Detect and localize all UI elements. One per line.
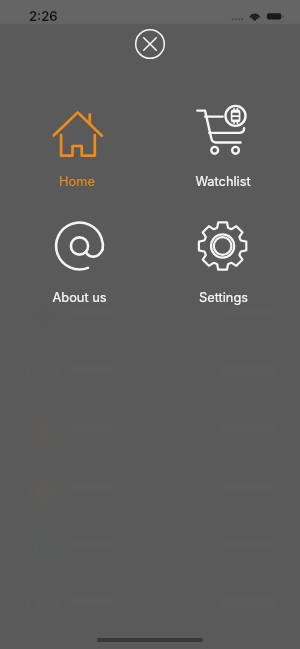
button[interactable]: Settings bbox=[177, 216, 269, 304]
staticText: Home bbox=[59, 174, 95, 189]
button[interactable]: About us bbox=[33, 216, 125, 304]
button[interactable]: Home bbox=[31, 100, 123, 188]
staticText: Watchlist bbox=[195, 174, 251, 189]
button[interactable]: Watchlist bbox=[177, 100, 269, 188]
button[interactable]: Close menu bbox=[133, 27, 167, 61]
staticText: Settings bbox=[199, 290, 248, 305]
staticText: 2:26 bbox=[29, 8, 58, 24]
staticText: About us bbox=[52, 290, 107, 305]
